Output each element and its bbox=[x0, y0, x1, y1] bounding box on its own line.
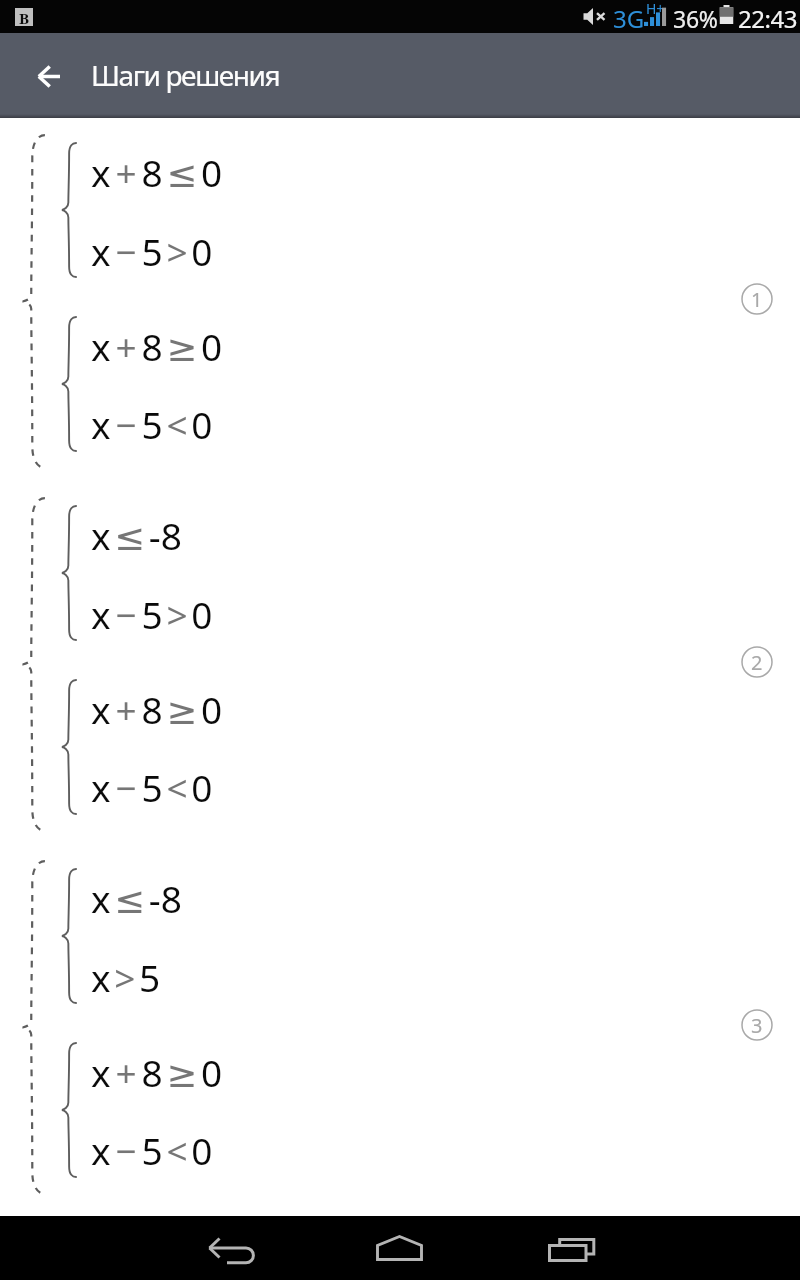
staticText: 1 bbox=[751, 286, 763, 313]
staticText: 2 bbox=[751, 649, 763, 676]
button[interactable]: x + 8 ≥ 0 bbox=[91, 317, 241, 377]
staticText: 36% bbox=[673, 3, 718, 34]
staticText: 3G bbox=[613, 2, 645, 35]
staticText: H+ bbox=[646, 0, 665, 18]
staticText: 3 bbox=[751, 1012, 763, 1039]
button[interactable]: x − 5 < 0 bbox=[91, 758, 241, 818]
staticText: x − 5 > 0 bbox=[91, 226, 213, 276]
staticText: x − 5 < 0 bbox=[91, 399, 213, 449]
staticText: 22:43 bbox=[738, 2, 797, 35]
button[interactable]: x ≤ -8 bbox=[91, 869, 241, 929]
button[interactable]: x − 5 > 0 bbox=[91, 585, 241, 645]
staticText: x + 8 ≤ 0 bbox=[91, 147, 223, 197]
staticText: x − 5 < 0 bbox=[91, 762, 213, 812]
button[interactable]: x − 5 < 0 bbox=[91, 395, 241, 455]
button[interactable]: Home bbox=[376, 1224, 424, 1272]
staticText: x ≤ -8 bbox=[91, 510, 182, 560]
button[interactable]: Recent apps bbox=[540, 1224, 596, 1272]
button[interactable]: Step 3 bbox=[741, 1009, 773, 1041]
staticText: x + 8 ≥ 0 bbox=[91, 684, 223, 734]
button[interactable]: x − 5 < 0 bbox=[91, 1121, 241, 1181]
button[interactable]: x ≤ -8 bbox=[91, 506, 241, 566]
button[interactable]: Step 2 bbox=[741, 646, 773, 678]
button[interactable]: x + 8 ≤ 0 bbox=[91, 143, 241, 203]
button[interactable]: x − 5 > 0 bbox=[91, 222, 241, 282]
button[interactable]: Back bbox=[197, 1224, 247, 1272]
button[interactable]: Back bbox=[23, 56, 73, 97]
staticText: x + 8 ≥ 0 bbox=[91, 1047, 223, 1097]
staticText: B bbox=[19, 8, 30, 26]
button[interactable]: x + 8 ≥ 0 bbox=[91, 1043, 241, 1103]
staticText: x ≤ -8 bbox=[91, 873, 182, 923]
button[interactable]: Step 1 bbox=[741, 283, 773, 315]
staticText: x > 5 bbox=[91, 952, 161, 1002]
staticText: x − 5 < 0 bbox=[91, 1125, 213, 1175]
button[interactable]: x > 5 bbox=[91, 948, 241, 1008]
staticText: x − 5 > 0 bbox=[91, 589, 213, 639]
staticText: x + 8 ≥ 0 bbox=[91, 321, 223, 371]
button[interactable]: x + 8 ≥ 0 bbox=[91, 680, 241, 740]
staticText: Шаги решения bbox=[91, 56, 280, 94]
